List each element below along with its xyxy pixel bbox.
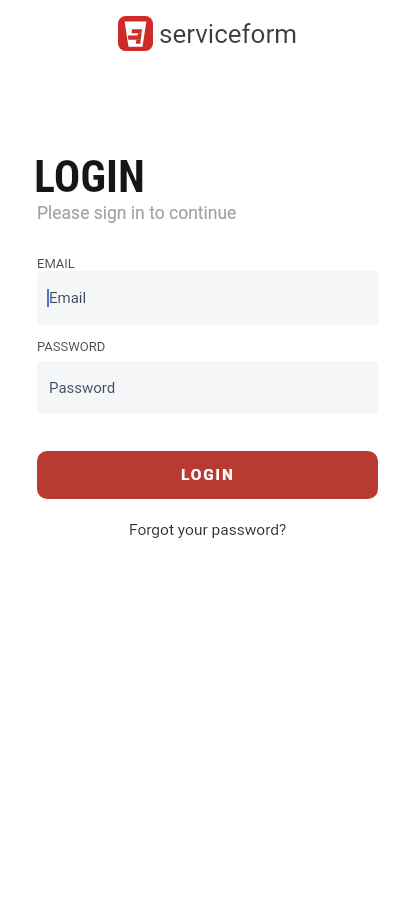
staticText: Forgot your password? xyxy=(129,521,287,539)
staticText: PASSWORD xyxy=(37,339,106,354)
button[interactable]: LOGIN xyxy=(37,451,378,499)
staticText: Please sign in to continue xyxy=(37,203,237,224)
staticText: LOGIN xyxy=(34,151,145,203)
button[interactable]: Forgot your password? xyxy=(129,521,287,539)
staticText: Email xyxy=(49,289,87,307)
button[interactable]: Password xyxy=(37,361,378,414)
staticText: Password xyxy=(49,379,116,397)
staticText: LOGIN xyxy=(181,466,235,484)
button[interactable]: Email xyxy=(37,271,378,325)
staticText: serviceform xyxy=(159,19,298,49)
staticText: EMAIL xyxy=(37,256,75,271)
